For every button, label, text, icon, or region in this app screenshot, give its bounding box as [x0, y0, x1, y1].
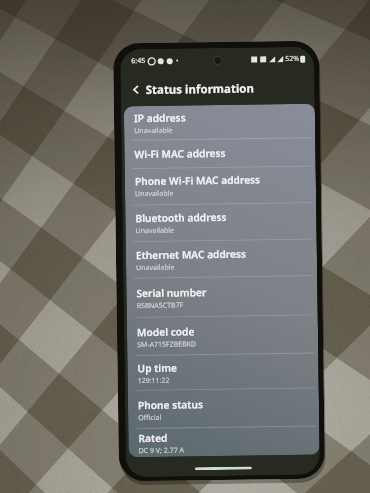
- staticText: Up time: [137, 361, 178, 375]
- staticText: Status information: [145, 80, 255, 98]
- button[interactable]: Back: [128, 82, 144, 97]
- staticText: Wi-Fi MAC address: [134, 146, 227, 161]
- staticText: 6:45: [131, 56, 145, 66]
- staticText: Ethernet MAC address: [136, 247, 247, 262]
- button[interactable]: Phone status: [128, 389, 319, 429]
- staticText: Phone Wi-Fi MAC address: [135, 172, 261, 188]
- button[interactable]: Back: [120, 71, 315, 106]
- staticText: Official: [138, 413, 161, 423]
- staticText: Unavailable: [136, 263, 175, 273]
- staticText: Unavailable: [134, 126, 173, 136]
- staticText: DC 9 V; 2.77 A: [139, 445, 185, 456]
- button[interactable]: Up time: [127, 354, 319, 391]
- button[interactable]: Ethernet MAC address: [126, 240, 317, 279]
- staticText: IP address: [134, 110, 186, 125]
- button[interactable]: IP address: [124, 104, 315, 140]
- button[interactable]: Bluetooth address: [125, 203, 317, 242]
- button[interactable]: Phone Wi-Fi MAC address: [125, 166, 316, 205]
- staticText: 129:11:22: [138, 376, 170, 386]
- staticText: R58NA5CTB7F: [137, 300, 184, 311]
- staticText: Rated: [138, 431, 168, 445]
- button[interactable]: Rated: [128, 427, 320, 457]
- button[interactable]: Model code: [127, 316, 318, 356]
- button[interactable]: Wi-Fi MAC address: [124, 138, 316, 168]
- staticText: Serial number: [136, 285, 206, 300]
- staticText: Bluetooth address: [135, 210, 226, 225]
- staticText: Unavailable: [135, 226, 175, 236]
- staticText: Model code: [137, 324, 195, 339]
- staticText: Unavailable: [135, 189, 174, 199]
- staticText: 52%: [285, 54, 299, 64]
- staticText: Phone status: [138, 397, 203, 412]
- staticText: SM-A715FZBEBKD: [137, 339, 197, 350]
- button[interactable]: Serial number: [126, 277, 318, 318]
